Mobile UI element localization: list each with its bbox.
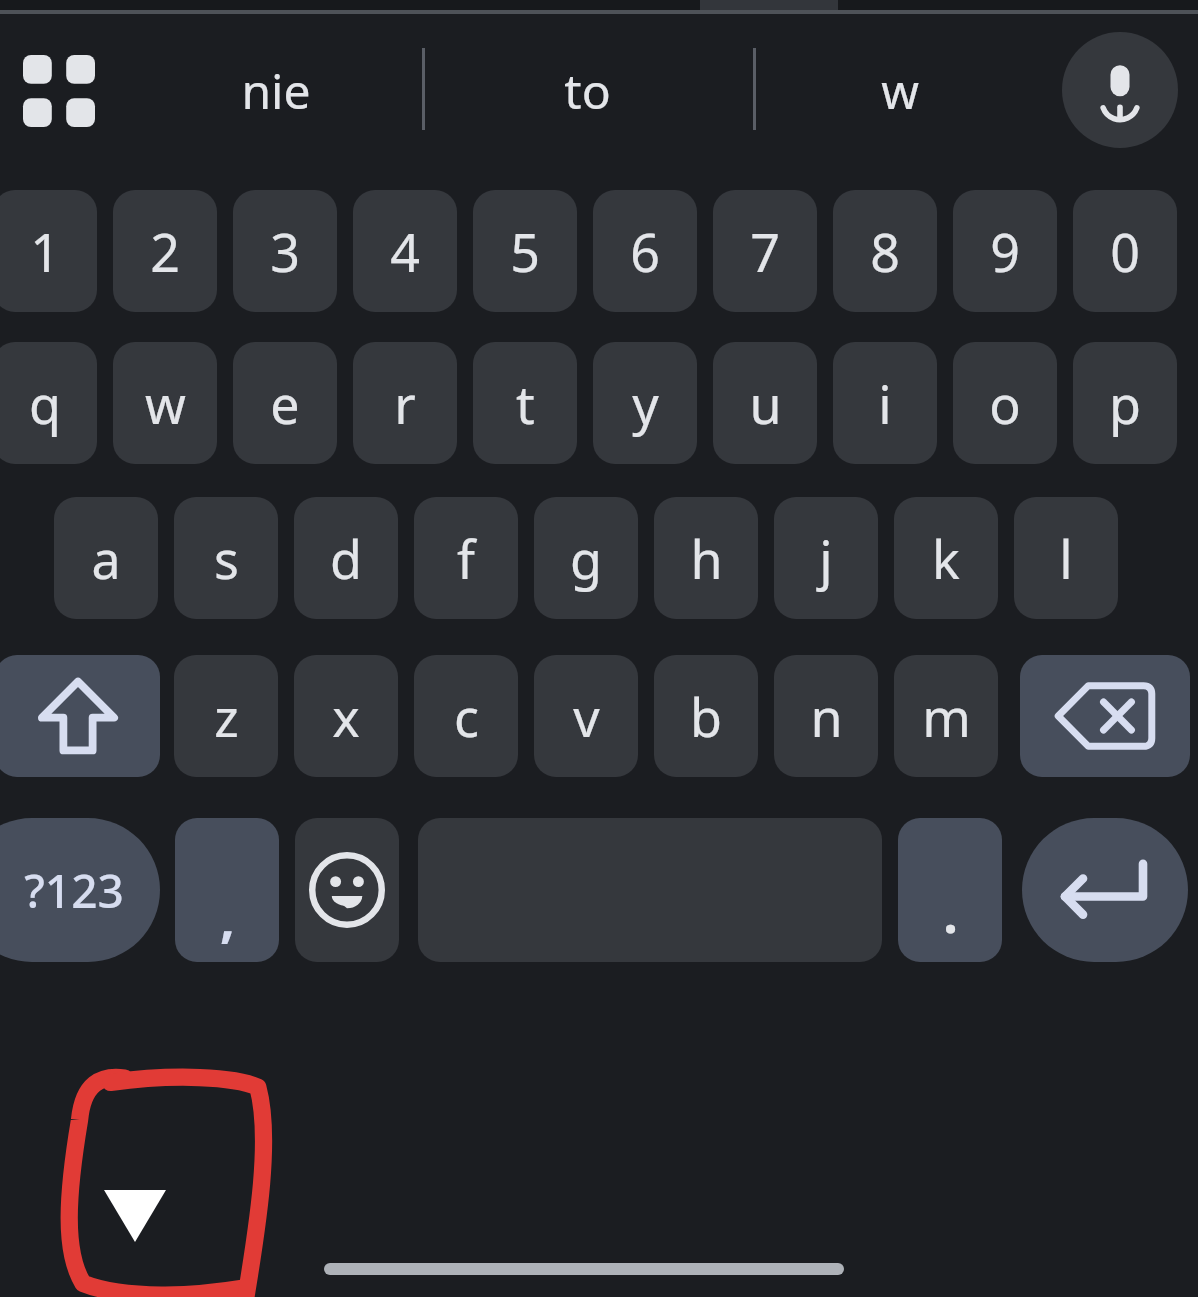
staticText: 6: [630, 216, 660, 287]
staticText: f: [457, 523, 475, 594]
button[interactable]: s: [174, 497, 278, 619]
button[interactable]: y: [593, 342, 697, 464]
button[interactable]: ?123: [0, 818, 160, 962]
staticText: g: [570, 523, 602, 594]
button[interactable]: o: [953, 342, 1057, 464]
staticText: .: [943, 877, 958, 948]
staticText: 9: [990, 216, 1020, 287]
staticText: i: [878, 368, 892, 439]
button[interactable]: b: [654, 655, 758, 777]
button[interactable]: w: [113, 342, 217, 464]
button[interactable]: 3: [233, 190, 337, 312]
button[interactable]: c: [414, 655, 518, 777]
button[interactable]: i: [833, 342, 937, 464]
staticText: x: [332, 681, 360, 752]
staticText: w: [881, 58, 919, 123]
staticText: b: [690, 681, 722, 752]
staticText: r: [394, 368, 416, 439]
staticText: s: [214, 523, 239, 594]
button[interactable]: t: [473, 342, 577, 464]
button[interactable]: Enter: [1022, 818, 1188, 962]
button[interactable]: 2: [113, 190, 217, 312]
staticText: 5: [510, 216, 540, 287]
staticText: j: [819, 523, 833, 594]
button[interactable]: 1: [0, 190, 97, 312]
button[interactable]: Shift: [0, 655, 160, 777]
staticText: nie: [241, 58, 311, 123]
button[interactable]: a: [54, 497, 158, 619]
button[interactable]: Hide keyboard: [95, 1180, 175, 1252]
staticText: 4: [390, 216, 420, 287]
staticText: m: [922, 681, 971, 752]
button[interactable]: Apps: [20, 52, 98, 130]
staticText: o: [989, 368, 1021, 439]
staticText: c: [454, 681, 479, 752]
button[interactable]: h: [654, 497, 758, 619]
staticText: w: [145, 368, 186, 439]
button[interactable]: p: [1073, 342, 1177, 464]
button[interactable]: nie: [130, 30, 422, 150]
button[interactable]: m: [894, 655, 998, 777]
staticText: a: [91, 523, 121, 594]
button[interactable]: Emoji: [295, 818, 399, 962]
button[interactable]: u: [713, 342, 817, 464]
staticText: h: [690, 523, 723, 594]
staticText: v: [573, 681, 600, 752]
button[interactable]: d: [294, 497, 398, 619]
button[interactable]: k: [894, 497, 998, 619]
button[interactable]: v: [534, 655, 638, 777]
button[interactable]: 4: [353, 190, 457, 312]
button[interactable]: 6: [593, 190, 697, 312]
staticText: 8: [870, 216, 900, 287]
button[interactable]: z: [174, 655, 278, 777]
staticText: y: [632, 368, 659, 439]
staticText: 7: [750, 216, 780, 287]
button[interactable]: ,: [175, 818, 279, 962]
staticText: d: [330, 523, 362, 594]
button[interactable]: 0: [1073, 190, 1177, 312]
staticText: e: [270, 368, 300, 439]
button[interactable]: 5: [473, 190, 577, 312]
button[interactable]: Voice input: [1062, 32, 1178, 148]
staticText: u: [749, 368, 782, 439]
button[interactable]: to: [440, 30, 735, 150]
button[interactable]: q: [0, 342, 97, 464]
button[interactable]: j: [774, 497, 878, 619]
button[interactable]: 8: [833, 190, 937, 312]
staticText: p: [1109, 368, 1141, 439]
staticText: ,: [220, 881, 235, 952]
button[interactable]: g: [534, 497, 638, 619]
button[interactable]: x: [294, 655, 398, 777]
button[interactable]: 9: [953, 190, 1057, 312]
button[interactable]: f: [414, 497, 518, 619]
staticText: n: [810, 681, 843, 752]
button[interactable]: 7: [713, 190, 817, 312]
staticText: t: [516, 368, 535, 439]
button[interactable]: Backspace: [1020, 655, 1190, 777]
button[interactable]: .: [898, 818, 1002, 962]
staticText: ?123: [24, 859, 124, 922]
button[interactable]: w: [770, 30, 1030, 150]
staticText: to: [564, 58, 611, 123]
staticText: z: [214, 681, 239, 752]
staticText: 2: [150, 216, 180, 287]
staticText: 0: [1110, 216, 1140, 287]
staticText: 1: [30, 216, 60, 287]
staticText: l: [1059, 523, 1073, 594]
button[interactable]: e: [233, 342, 337, 464]
button[interactable]: r: [353, 342, 457, 464]
staticText: 3: [270, 216, 300, 287]
button[interactable]: l: [1014, 497, 1118, 619]
staticText: q: [29, 368, 61, 439]
staticText: k: [932, 523, 960, 594]
button[interactable]: n: [774, 655, 878, 777]
